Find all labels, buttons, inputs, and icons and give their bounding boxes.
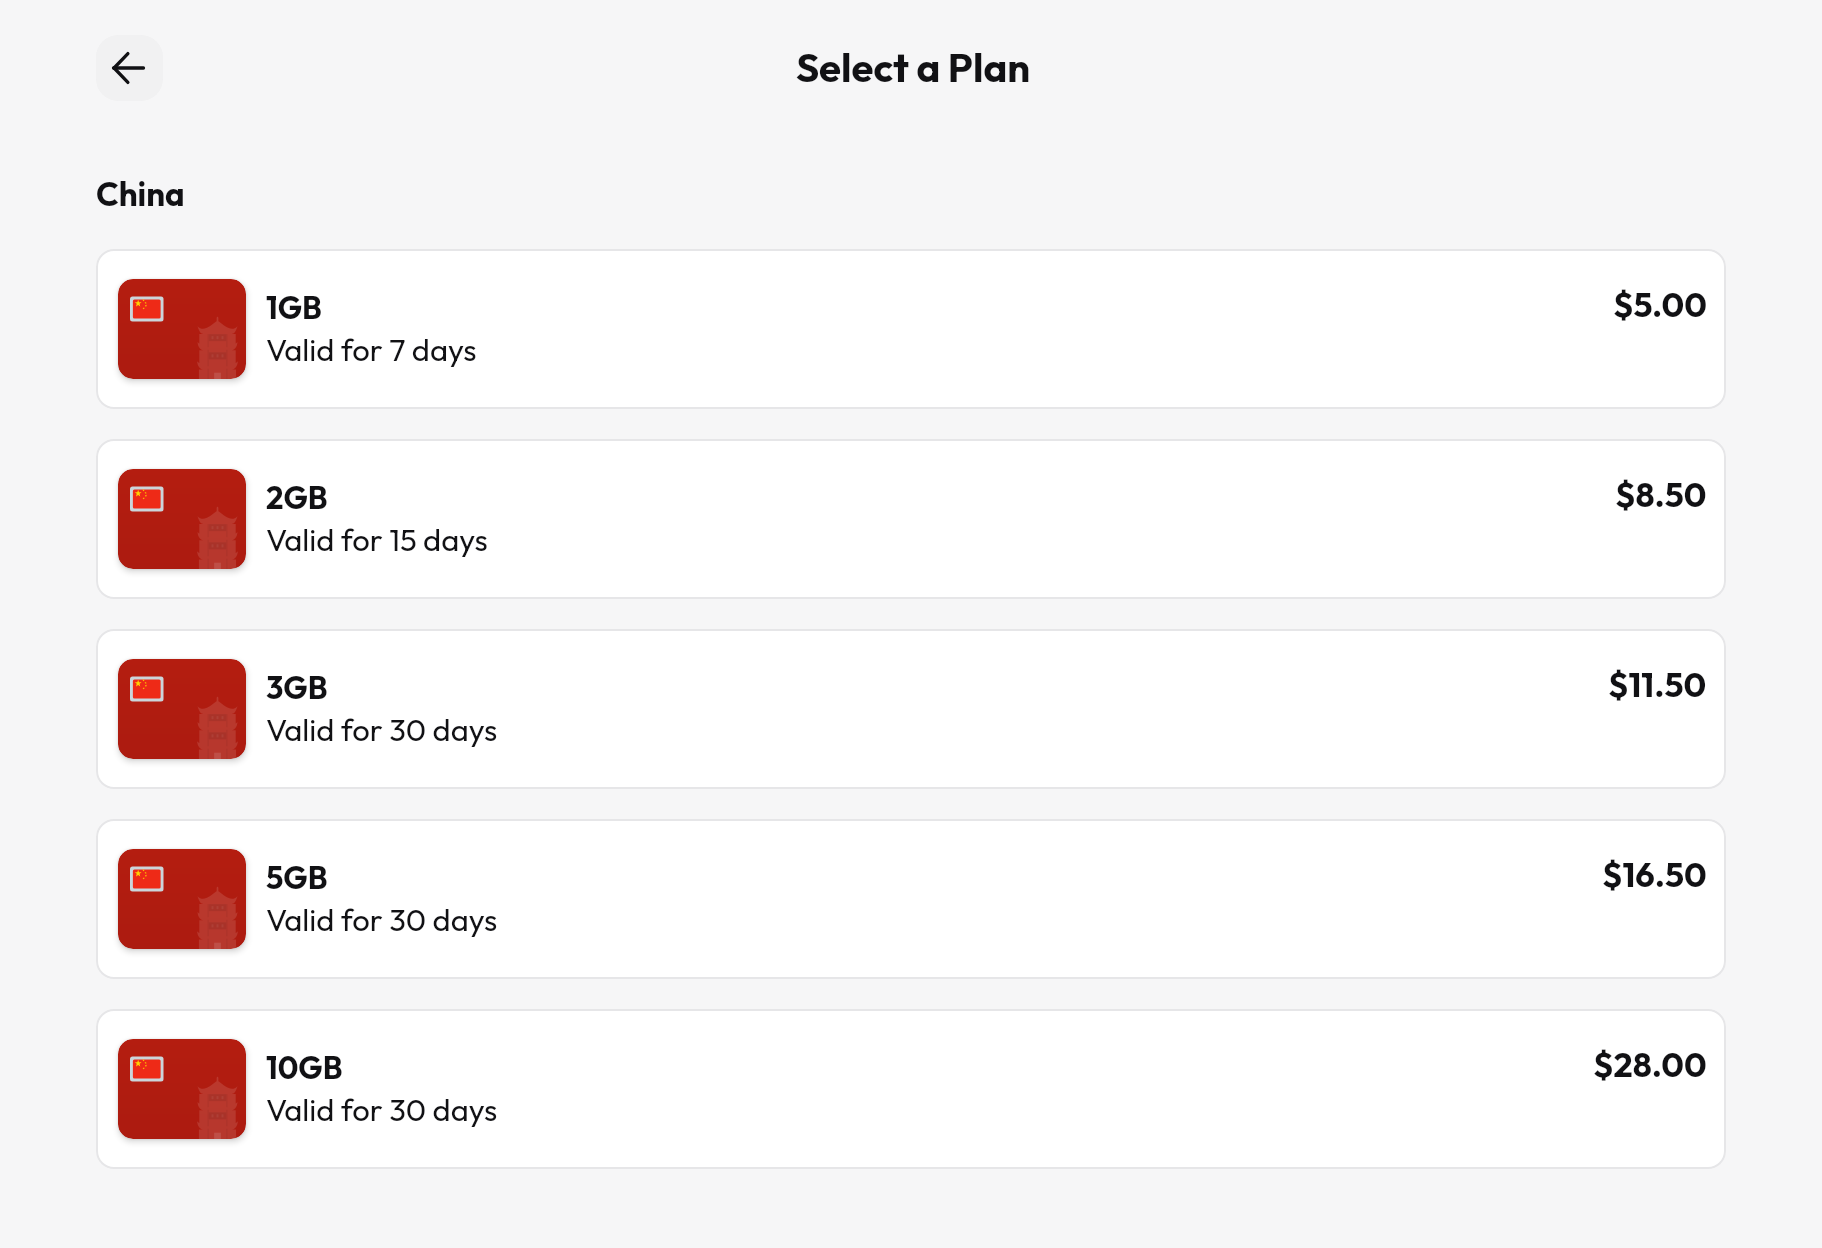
staticText: 1GB [266,288,322,327]
button[interactable]: Back [96,35,163,101]
staticText: Valid for 30 days [266,710,498,749]
staticText: Valid for 30 days [266,900,498,939]
button[interactable]: 1GB [96,249,1726,409]
staticText: 10GB [266,1048,343,1087]
button[interactable]: 3GB [96,629,1726,789]
staticText: $28.00 [1593,1043,1707,1086]
staticText: $16.50 [1602,853,1707,896]
staticText: Valid for 30 days [266,1090,498,1129]
staticText: $5.00 [1613,283,1707,326]
staticText: 2GB [266,478,328,517]
staticText: $11.50 [1608,663,1707,706]
staticText: 3GB [266,668,328,707]
staticText: 5GB [266,858,328,897]
button[interactable]: 10GB [96,1009,1726,1169]
staticText: Select a Plan [2,42,1822,92]
staticText: $8.50 [1615,473,1707,516]
staticText: Valid for 15 days [266,520,488,559]
button[interactable]: 2GB [96,439,1726,599]
button[interactable]: 5GB [96,819,1726,979]
staticText: Valid for 7 days [266,330,477,369]
staticText: China [96,173,185,215]
